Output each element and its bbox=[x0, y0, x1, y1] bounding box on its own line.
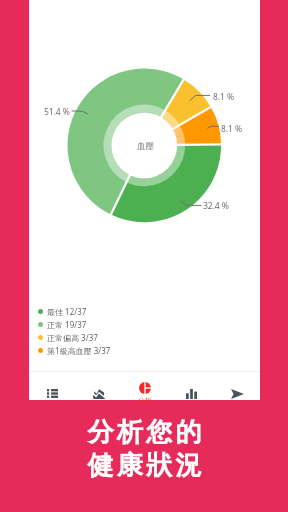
staticText: 健康狀況 bbox=[87, 449, 205, 482]
staticText: 32.4 % bbox=[203, 200, 229, 212]
staticText: 51.4 % bbox=[44, 106, 70, 118]
staticText: 分析 bbox=[138, 396, 152, 405]
staticText: 分析您的 bbox=[87, 416, 205, 449]
staticText: 血壓 bbox=[137, 141, 154, 152]
staticText: 最佳 12/37 bbox=[47, 306, 87, 317]
button[interactable]: Share bbox=[214, 371, 260, 400]
button[interactable]: 正常偏高 3/37 bbox=[38, 331, 98, 344]
button[interactable]: 第1級高血壓 3/37 bbox=[38, 344, 111, 357]
staticText: 8.1 % bbox=[213, 91, 235, 103]
button[interactable]: Analysis bbox=[122, 371, 168, 400]
staticText: 8.1 % bbox=[221, 123, 243, 135]
staticText: 正常 19/37 bbox=[47, 319, 87, 330]
button[interactable]: List bbox=[29, 371, 76, 400]
button[interactable]: 正常 19/37 bbox=[38, 318, 87, 331]
button[interactable]: 最佳 12/37 bbox=[38, 305, 87, 318]
staticText: 第1級高血壓 3/37 bbox=[47, 345, 111, 356]
button[interactable]: Trends bbox=[76, 371, 122, 400]
button[interactable]: Statistics bbox=[168, 371, 214, 400]
staticText: 正常偏高 3/37 bbox=[47, 332, 98, 343]
